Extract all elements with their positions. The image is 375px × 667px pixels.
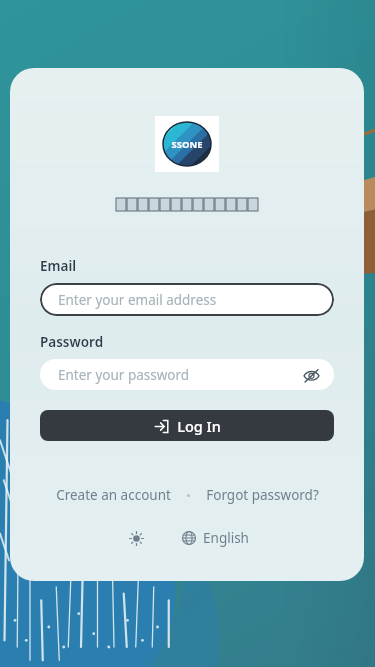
button[interactable]: Log In [40, 410, 334, 441]
button[interactable]: Enter your email address [40, 283, 334, 316]
button[interactable]: Create an account [54, 484, 173, 506]
staticText: English [203, 529, 249, 547]
button[interactable]: Enter your password [40, 359, 334, 390]
staticText: Password [40, 333, 334, 351]
staticText: Enter your password [58, 366, 190, 384]
staticText: Email [40, 257, 334, 275]
staticText: Forgot password? [206, 486, 319, 504]
staticText: Enter your email address [58, 291, 217, 309]
staticText: Log In [177, 416, 221, 436]
button[interactable]: Show password [300, 364, 322, 386]
staticText: SSONE [171, 138, 203, 151]
button[interactable]: Forgot password? [204, 484, 321, 506]
button[interactable]: English [180, 527, 251, 549]
button[interactable]: Toggle theme [124, 526, 148, 550]
staticText: Create an account [56, 486, 171, 504]
